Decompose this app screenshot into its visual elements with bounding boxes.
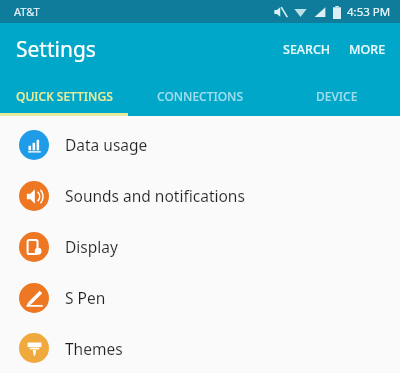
- button[interactable]: DEVICE: [273, 75, 400, 116]
- staticText: 4:53 PM: [347, 4, 391, 20]
- staticText: QUICK SETTINGS: [16, 88, 113, 104]
- staticText: SEARCH: [283, 41, 331, 58]
- staticText: S Pen: [65, 287, 106, 308]
- staticText: Settings: [16, 35, 96, 64]
- staticText: Sounds and notifications: [65, 185, 245, 206]
- staticText: Themes: [65, 338, 123, 359]
- button[interactable]: Data usage: [0, 119, 400, 170]
- staticText: AT&T: [14, 4, 40, 19]
- button[interactable]: MORE: [339, 31, 400, 68]
- button[interactable]: Themes: [0, 323, 400, 373]
- button[interactable]: S Pen: [0, 272, 400, 323]
- button[interactable]: Display: [0, 221, 400, 272]
- staticText: Data usage: [65, 134, 148, 155]
- button[interactable]: CONNECTIONS: [128, 75, 273, 116]
- staticText: MORE: [349, 41, 386, 58]
- button[interactable]: SEARCH: [275, 31, 339, 68]
- button[interactable]: Sounds and notifications: [0, 170, 400, 221]
- staticText: Display: [65, 236, 118, 257]
- staticText: CONNECTIONS: [157, 88, 244, 104]
- button[interactable]: QUICK SETTINGS: [0, 75, 128, 116]
- staticText: DEVICE: [316, 88, 358, 104]
